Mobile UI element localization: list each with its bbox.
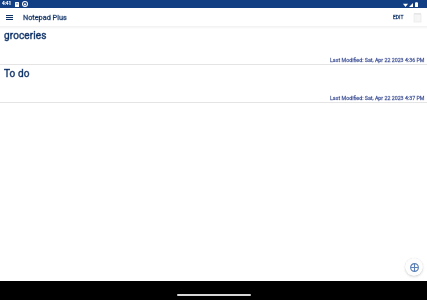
staticText: Last Modified: Sat, Apr 22 2023 4:36 PM [330,57,425,63]
staticText: Last Modified: Sat, Apr 22 2023 4:37 PM [330,95,425,101]
staticText: To do [4,68,30,80]
staticText: Notepad Plus [23,13,67,22]
staticText: Notepad Plus [23,13,67,22]
staticText: Last Modified: Sat, Apr 22 2023 4:37 PM [330,95,425,101]
staticText: groceries [4,30,47,42]
button[interactable]: Add note [405,258,423,276]
staticText: EDIT [393,14,404,20]
button[interactable]: Delete note [412,8,423,26]
staticText: 4:41 [2,1,12,7]
staticText: EDIT [393,14,404,20]
button[interactable]: groceries [0,27,427,65]
button[interactable]: EDIT [389,8,405,26]
button[interactable]: To do [0,65,427,103]
staticText: To do [4,68,30,80]
staticText: groceries [4,30,47,42]
staticText: Last Modified: Sat, Apr 22 2023 4:36 PM [330,57,425,63]
button[interactable]: Open navigation menu [0,8,18,26]
